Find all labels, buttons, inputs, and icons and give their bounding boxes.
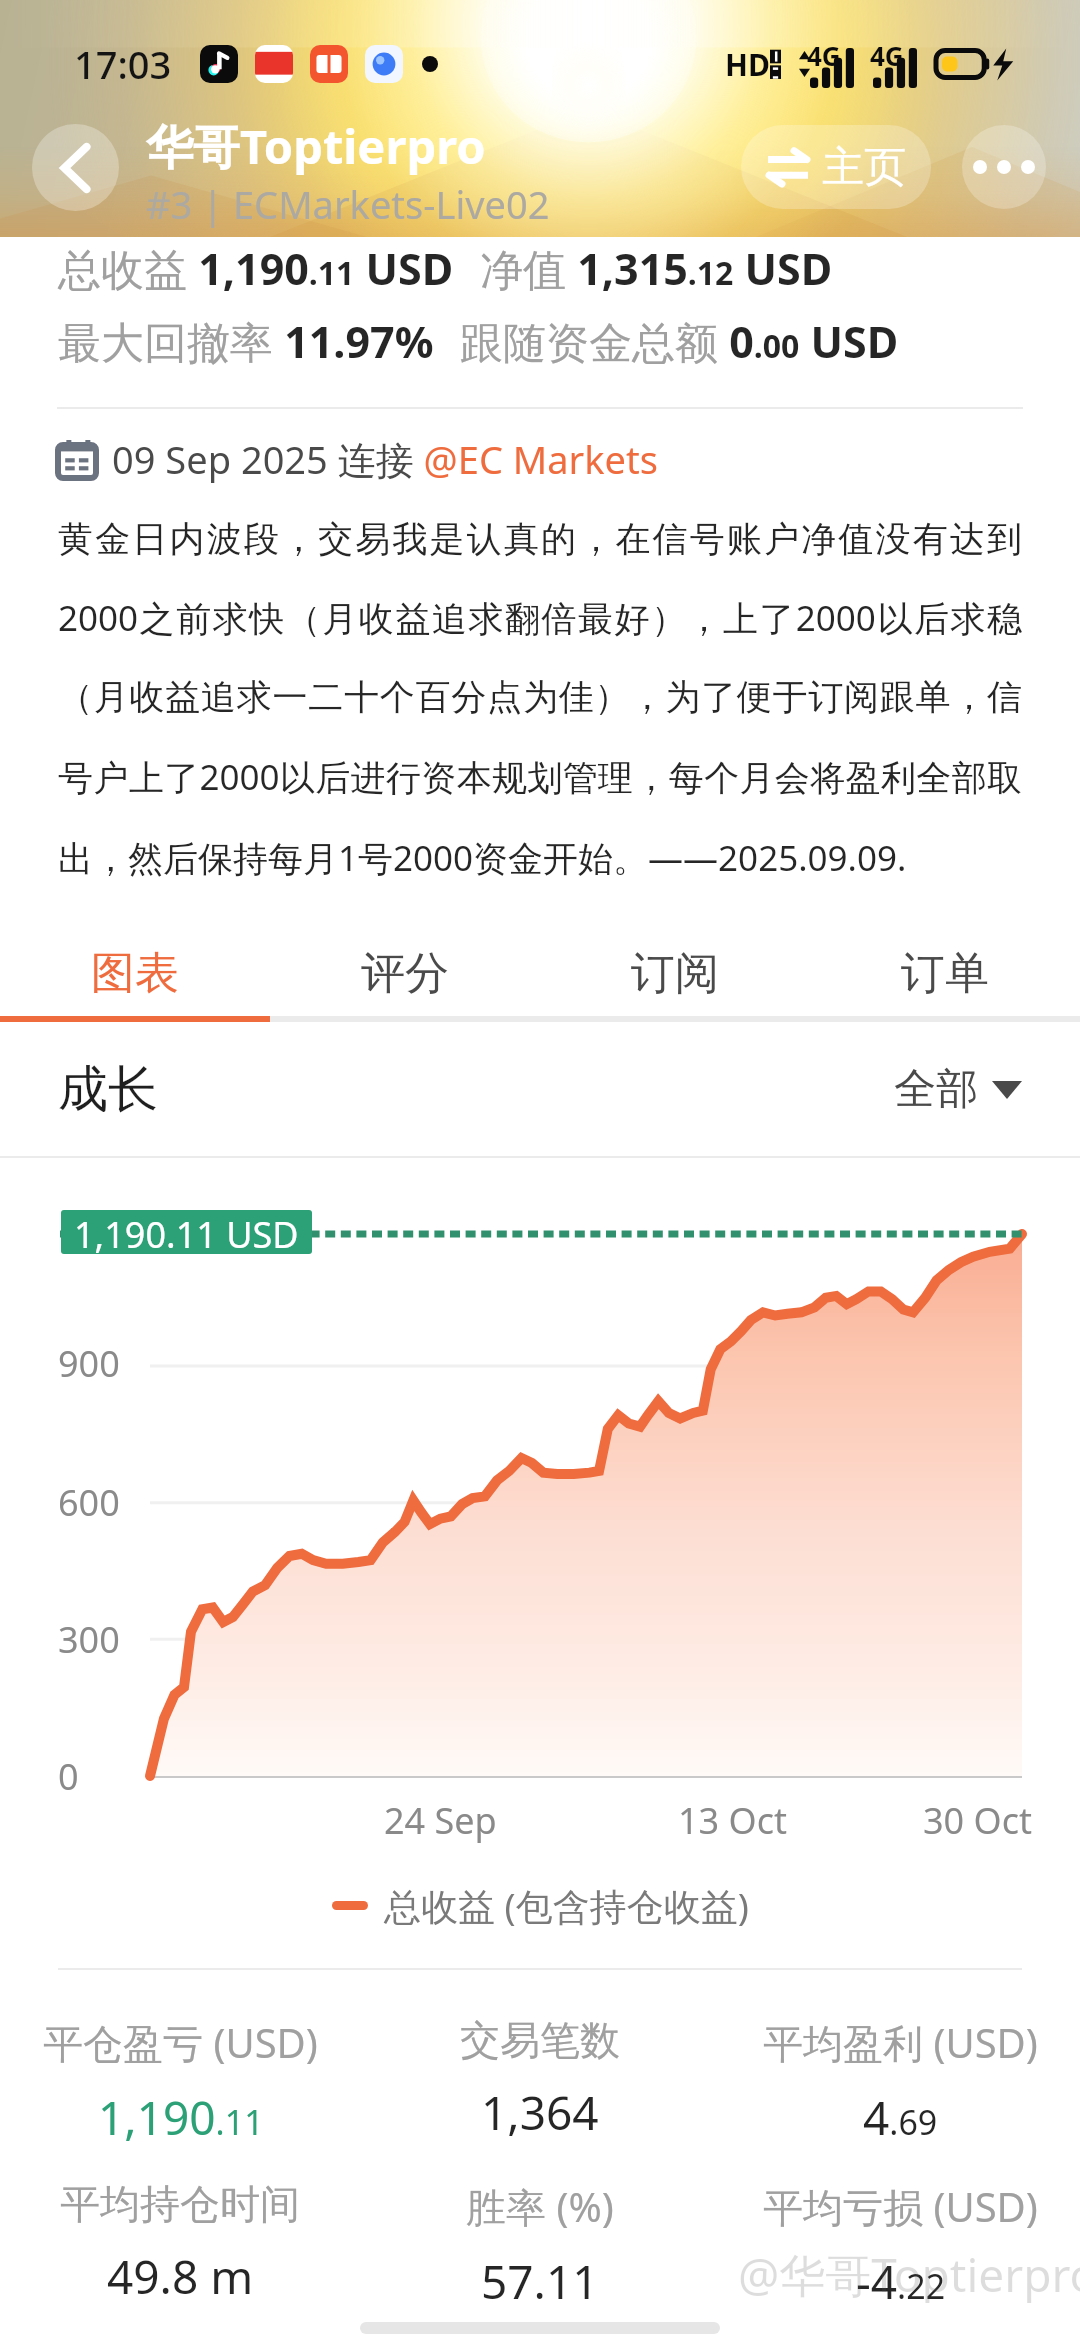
staticText: 订单: [901, 946, 989, 1001]
staticText: 交易笔数: [460, 2015, 620, 2065]
button[interactable]: 评分: [270, 930, 540, 1016]
staticText: 57.11: [481, 2250, 599, 2313]
staticText: 总收益 (包含持仓收益): [384, 1880, 749, 1931]
staticText: 黄金日内波段，交易我是认真的，在信号账户净值没有达到2000之前求快（月收益追求…: [58, 517, 1022, 882]
staticText: 49.8 m: [107, 2245, 254, 2308]
staticText: 4G: [807, 38, 841, 73]
staticText: 评分: [361, 946, 449, 1001]
button[interactable]: 全部: [894, 1063, 1022, 1116]
staticText: 华哥Toptierpro: [146, 114, 486, 178]
staticText: 平均持仓时间: [60, 2179, 300, 2229]
staticText: HD: [725, 44, 770, 85]
button[interactable]: 图表: [0, 930, 270, 1016]
staticText: @华哥Toptierpro: [738, 2243, 1080, 2306]
staticText: 胜率 (%): [466, 2179, 614, 2234]
staticText: 最大回撤率 11.97%: [58, 312, 434, 371]
staticText: #3 | ECMarkets-Live02: [146, 178, 550, 230]
staticText: 订阅: [631, 946, 719, 1001]
staticText: 4.69: [863, 2086, 938, 2149]
staticText: 平均亏损 (USD): [763, 2179, 1038, 2234]
staticText: 24 Sep: [384, 1796, 497, 1845]
staticText: 主页: [822, 141, 906, 194]
staticText: 600: [58, 1478, 120, 1527]
staticText: 跟随资金总额 0.00 USD: [460, 312, 899, 371]
staticText: 平均盈利 (USD): [763, 2015, 1038, 2070]
staticText: -4.22: [856, 2250, 946, 2313]
staticText: 全部: [894, 1063, 978, 1116]
staticText: 净值 1,315.12 USD: [480, 239, 833, 298]
button[interactable]: 订阅: [540, 930, 810, 1016]
staticText: 17:03: [74, 38, 172, 90]
staticText: 4G: [870, 38, 904, 73]
staticText: 0: [58, 1752, 79, 1801]
staticText: 300: [58, 1615, 120, 1664]
staticText: 图表: [91, 946, 179, 1001]
button[interactable]: Back: [32, 124, 119, 211]
staticText: 1,364: [481, 2081, 599, 2144]
staticText: 900: [58, 1339, 120, 1388]
staticText: 30 Oct: [923, 1796, 1032, 1845]
staticText: 09 Sep 2025 连接 @EC Markets: [112, 433, 658, 485]
staticText: 平仓盈亏 (USD): [43, 2015, 318, 2070]
staticText: 成长: [58, 1058, 158, 1121]
staticText: 13 Oct: [678, 1796, 787, 1845]
staticText: 总收益 1,190.11 USD: [58, 239, 454, 298]
staticText: 1,190.11 USD: [74, 1210, 299, 1254]
staticText: 1,190.11: [98, 2086, 264, 2149]
button[interactable]: 订单: [810, 930, 1080, 1016]
button[interactable]: 主页: [741, 125, 931, 209]
button[interactable]: More options: [962, 125, 1046, 209]
